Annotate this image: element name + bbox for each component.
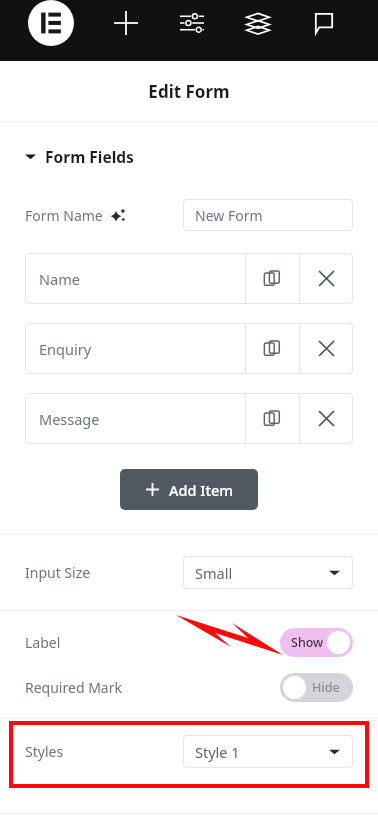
button[interactable]: Form Fields	[0, 142, 378, 171]
button[interactable]: New Form	[183, 199, 353, 231]
button[interactable]: Remove Enquiry	[300, 323, 353, 374]
staticText: Styles	[25, 742, 64, 761]
staticText: Name	[39, 269, 80, 289]
button[interactable]: Small	[183, 556, 353, 589]
button[interactable]: Elementor	[28, 0, 74, 46]
staticText: Form Name	[25, 206, 103, 225]
button[interactable]: Settings	[172, 3, 212, 43]
button[interactable]: Style 1	[183, 735, 353, 768]
button[interactable]: Duplicate Message	[246, 393, 299, 444]
button[interactable]: Hide	[280, 673, 353, 702]
staticText: Label	[25, 633, 61, 652]
staticText: Hide	[312, 679, 340, 696]
staticText: Enquiry	[39, 339, 92, 359]
button[interactable]: Remove Message	[300, 393, 353, 444]
staticText: Message	[39, 409, 100, 429]
staticText: Required Mark	[25, 678, 122, 697]
staticText: Add Item	[169, 480, 233, 500]
button[interactable]: Add Item	[120, 469, 258, 510]
button[interactable]: Show	[280, 628, 353, 657]
staticText: New Form	[195, 206, 263, 225]
staticText: Edit Form	[148, 80, 230, 103]
button[interactable]: Enquiry	[25, 323, 245, 374]
button[interactable]: Duplicate Name	[246, 253, 299, 304]
staticText: Small	[195, 563, 233, 583]
button[interactable]: Duplicate Enquiry	[246, 323, 299, 374]
staticText: Input Size	[25, 563, 91, 582]
button[interactable]: Layers	[238, 3, 278, 43]
staticText: Style 1	[195, 742, 240, 762]
button[interactable]: Comments	[304, 3, 344, 43]
staticText: Show	[291, 634, 324, 651]
button[interactable]: Add	[106, 3, 146, 43]
button[interactable]: Remove Name	[300, 253, 353, 304]
button[interactable]: Name	[25, 253, 245, 304]
button[interactable]: Message	[25, 393, 245, 444]
staticText: Form Fields	[45, 146, 134, 167]
